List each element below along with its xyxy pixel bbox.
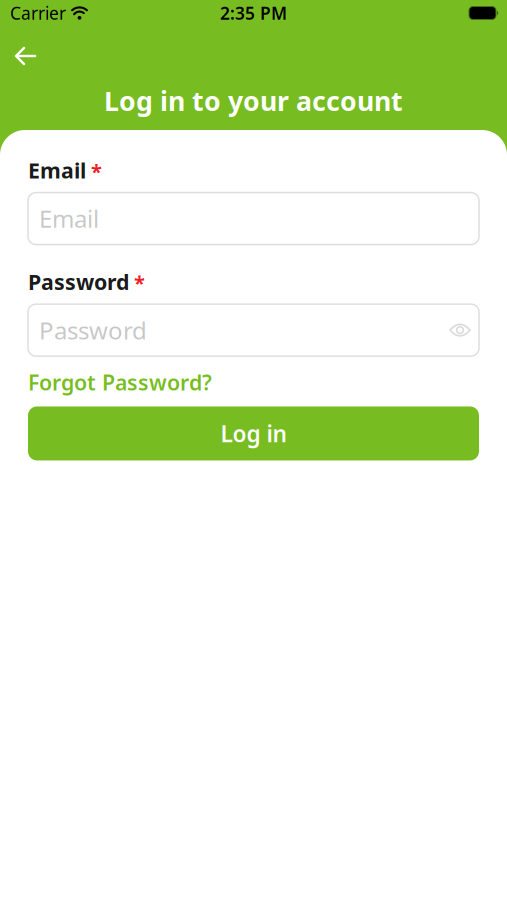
button[interactable]: Password — [28, 304, 479, 356]
button[interactable]: Show password — [449, 323, 471, 337]
button[interactable]: Forgot Password? — [28, 368, 212, 396]
staticText: Forgot Password? — [28, 368, 212, 396]
staticText: Carrier — [10, 1, 66, 24]
button[interactable]: Email — [28, 193, 479, 245]
staticText: Log in — [220, 418, 286, 448]
staticText: Email — [28, 156, 86, 184]
button[interactable]: Log in — [28, 406, 479, 460]
button[interactable]: Back — [14, 47, 36, 65]
staticText: 2:35 PM — [220, 1, 287, 24]
staticText: Log in to your account — [104, 83, 403, 118]
staticText: Password — [28, 268, 129, 296]
staticText: Password — [39, 314, 147, 346]
staticText: Email — [39, 203, 99, 234]
staticText: * — [91, 158, 102, 185]
staticText: * — [134, 270, 145, 296]
